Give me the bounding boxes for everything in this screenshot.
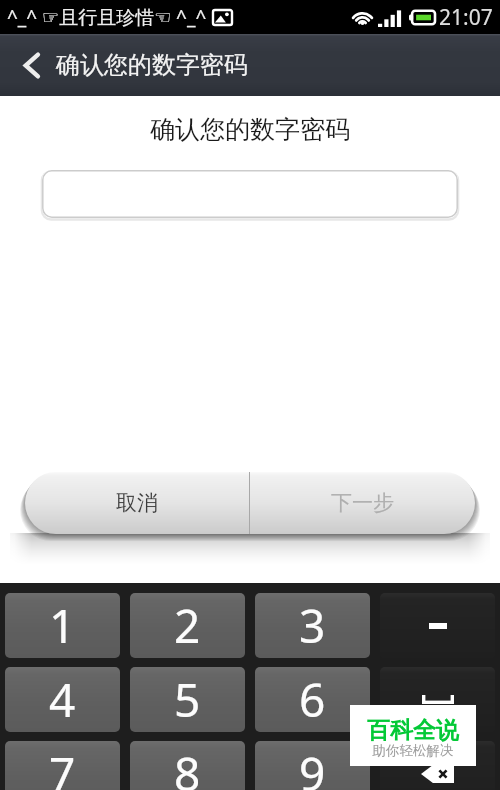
button[interactable]: Space bbox=[380, 667, 495, 732]
staticText: 6 bbox=[299, 668, 326, 731]
button[interactable]: Back bbox=[10, 39, 52, 91]
staticText: 1 bbox=[49, 594, 76, 657]
staticText: 21:07 bbox=[439, 3, 493, 32]
staticText: 助你轻松解决 bbox=[350, 742, 476, 759]
staticText: 确认您的数字密码 bbox=[56, 50, 248, 80]
button[interactable]: 取消 bbox=[25, 472, 249, 534]
staticText: 下一步 bbox=[331, 490, 394, 516]
staticText: 4 bbox=[49, 668, 76, 731]
staticText: 9 bbox=[299, 742, 326, 790]
button[interactable]: 1 bbox=[5, 593, 120, 658]
staticText: 8 bbox=[174, 742, 201, 790]
button[interactable]: 4 bbox=[5, 667, 120, 732]
button[interactable]: 2 bbox=[130, 593, 245, 658]
button[interactable] bbox=[42, 170, 458, 218]
staticText: 5 bbox=[174, 668, 201, 731]
button[interactable]: 下一步 bbox=[250, 472, 475, 534]
staticText: ^_^ ☞且行且珍惜☜ ^_^ bbox=[7, 4, 207, 30]
staticText: 确认您的数字密码 bbox=[0, 114, 500, 145]
staticText: 取消 bbox=[116, 490, 158, 516]
button[interactable]: 6 bbox=[255, 667, 370, 732]
staticText: 2 bbox=[174, 594, 201, 657]
staticText: 3 bbox=[299, 594, 326, 657]
staticText: 百科全说 bbox=[350, 716, 476, 745]
button[interactable]: Backspace bbox=[380, 741, 495, 790]
button[interactable]: 9 bbox=[255, 741, 370, 790]
button[interactable]: 5 bbox=[130, 667, 245, 732]
button[interactable]: 8 bbox=[130, 741, 245, 790]
staticText: 7 bbox=[49, 742, 76, 790]
button[interactable]: 7 bbox=[5, 741, 120, 790]
button[interactable]: Minus bbox=[380, 593, 495, 658]
button[interactable]: 3 bbox=[255, 593, 370, 658]
